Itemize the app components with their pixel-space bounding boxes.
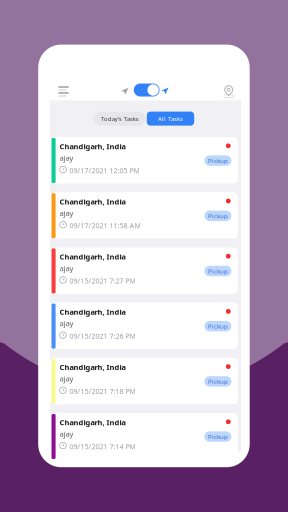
staticText: Chandigarh, India bbox=[60, 141, 126, 151]
staticText: Chandigarh, India bbox=[60, 417, 126, 427]
staticText: Chandigarh, India bbox=[60, 307, 126, 317]
staticText: Pickup bbox=[208, 212, 228, 220]
staticText: Pickup bbox=[208, 267, 228, 275]
staticText: 09/17/2021 12:05 PM bbox=[69, 166, 139, 175]
staticText: Chandigarh, India bbox=[60, 196, 126, 207]
button[interactable]: Chandigarh, India bbox=[50, 137, 238, 183]
staticText: Chandigarh, India bbox=[60, 252, 126, 262]
staticText: ajay bbox=[60, 318, 74, 329]
staticText: ajay bbox=[60, 263, 74, 273]
button[interactable]: Chandigarh, India bbox=[50, 303, 238, 349]
staticText: 09/15/2021 7:27 PM bbox=[69, 276, 135, 286]
staticText: Pickup bbox=[208, 377, 228, 386]
staticText: Today's Tasks bbox=[101, 114, 139, 123]
staticText: ajay bbox=[60, 153, 74, 163]
staticText: 09/15/2021 7:18 PM bbox=[69, 386, 135, 396]
staticText: Pickup bbox=[208, 156, 228, 165]
staticText: 09/15/2021 7:14 PM bbox=[69, 442, 135, 451]
button[interactable]: Chandigarh, India bbox=[50, 192, 238, 239]
button[interactable]: Toggle tracking bbox=[134, 83, 160, 96]
staticText: 09/15/2021 7:26 PM bbox=[69, 331, 135, 341]
staticText: All Tasks bbox=[158, 114, 183, 123]
staticText: 09/17/2021 11:58 AM bbox=[69, 221, 140, 230]
button[interactable]: Chandigarh, India bbox=[50, 358, 238, 404]
staticText: ajay bbox=[60, 429, 74, 439]
button[interactable]: All Tasks bbox=[147, 112, 194, 126]
staticText: ajay bbox=[60, 373, 74, 384]
staticText: Pickup bbox=[208, 432, 228, 441]
button[interactable]: Today's Tasks bbox=[94, 112, 146, 126]
button[interactable]: Location bbox=[220, 82, 238, 100]
staticText: Pickup bbox=[208, 322, 228, 330]
staticText: ajay bbox=[60, 208, 74, 218]
staticText: Chandigarh, India bbox=[60, 362, 126, 372]
button[interactable]: Menu bbox=[51, 80, 75, 102]
button[interactable]: Chandigarh, India bbox=[50, 247, 238, 294]
button[interactable]: Chandigarh, India bbox=[50, 413, 238, 459]
